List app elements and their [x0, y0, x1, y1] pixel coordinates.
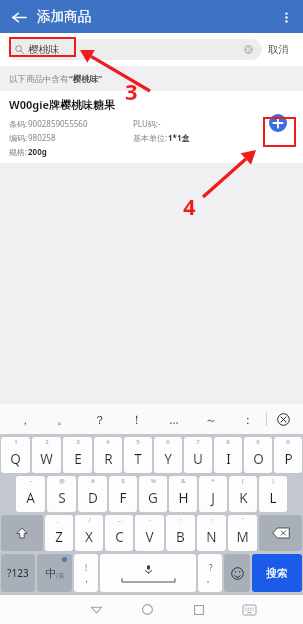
staticText: Q: [10, 450, 21, 468]
button[interactable]: ?: [198, 554, 222, 592]
button[interactable]: ': [228, 515, 257, 551]
button[interactable]: ?123: [1, 554, 35, 592]
button[interactable]: 3: [63, 437, 92, 473]
staticText: F: [119, 489, 127, 507]
staticText: 。: [206, 573, 215, 584]
staticText: ): [272, 477, 274, 485]
staticText: ～: [205, 412, 217, 427]
staticText: M: [236, 528, 249, 546]
button[interactable]: 取消: [262, 38, 295, 61]
button[interactable]: Back: [5, 3, 33, 31]
button[interactable]: ，: [6, 404, 44, 434]
staticText: J: [211, 489, 215, 507]
button[interactable]: Recents: [173, 595, 224, 624]
button[interactable]: /: [75, 515, 103, 551]
button[interactable]: !: [74, 554, 98, 592]
button[interactable]: Back: [70, 595, 122, 624]
staticText: 基本单位:: [133, 132, 168, 143]
button[interactable]: Delete: [267, 404, 299, 434]
button[interactable]: Backspace: [259, 515, 302, 551]
button[interactable]: Keyboard: [224, 595, 275, 624]
button[interactable]: More options: [273, 4, 299, 30]
button[interactable]: ～: [192, 404, 229, 434]
staticText: 搜索: [266, 566, 288, 580]
staticText: 200g: [28, 146, 47, 157]
button[interactable]: #: [78, 476, 107, 512]
button[interactable]: $: [109, 476, 137, 512]
staticText: X: [85, 528, 93, 546]
staticText: “樱桃味”: [69, 73, 103, 85]
button[interactable]: %: [139, 476, 167, 512]
button[interactable]: 5: [124, 437, 152, 473]
button[interactable]: Shift: [1, 515, 43, 551]
staticText: -: [149, 516, 151, 524]
button[interactable]: 中: [37, 554, 72, 592]
staticText: 4: [106, 438, 110, 446]
staticText: /: [88, 516, 91, 524]
button[interactable]: 6: [154, 437, 182, 473]
button[interactable]: 搜索: [252, 554, 302, 592]
staticText: PLU码:: [133, 118, 158, 129]
button[interactable]: 0: [274, 437, 302, 473]
button[interactable]: 。: [44, 404, 81, 434]
button[interactable]: Emoji: [224, 554, 250, 592]
staticText: $: [121, 477, 125, 485]
button[interactable]: ！: [118, 404, 155, 434]
staticText: 。: [57, 412, 69, 427]
button[interactable]: -: [135, 515, 164, 551]
staticText: ：: [242, 412, 254, 427]
staticText: ': [242, 516, 244, 524]
button[interactable]: 8: [214, 437, 242, 473]
staticText: 樱桃味: [28, 43, 60, 56]
button[interactable]: :: [166, 515, 195, 551]
staticText: 7: [196, 438, 200, 446]
staticText: 条码:: [9, 118, 28, 129]
button[interactable]: 9: [244, 437, 272, 473]
button[interactable]: ): [259, 476, 287, 512]
staticText: 3: [125, 76, 138, 106]
button[interactable]: 1: [1, 437, 30, 473]
staticText: B: [176, 528, 185, 546]
staticText: 9: [256, 438, 260, 446]
button[interactable]: ：: [229, 404, 266, 434]
button[interactable]: Space: [100, 554, 196, 592]
staticText: 5: [136, 438, 140, 446]
staticText: #: [91, 477, 95, 485]
staticText: ，: [19, 412, 31, 427]
staticText: 4: [183, 191, 196, 221]
button[interactable]: *: [199, 476, 227, 512]
button[interactable]: Add product: [266, 111, 290, 135]
button[interactable]: 、: [45, 515, 73, 551]
button[interactable]: 7: [184, 437, 212, 473]
staticText: ?: [209, 562, 213, 573]
staticText: E: [74, 450, 82, 468]
button[interactable]: ？: [81, 404, 118, 434]
staticText: L: [269, 489, 277, 507]
button[interactable]: 2: [32, 437, 61, 473]
staticText: 1: [14, 438, 18, 446]
button[interactable]: Home: [122, 595, 173, 624]
button[interactable]: Clear text: [242, 43, 255, 56]
staticText: Y: [164, 450, 172, 468]
button[interactable]: &: [169, 476, 197, 512]
staticText: 1*1盒: [168, 132, 190, 143]
button[interactable]: 樱桃味: [8, 39, 262, 60]
button[interactable]: …: [105, 515, 133, 551]
button[interactable]: 4: [94, 437, 122, 473]
staticText: 8: [226, 438, 230, 446]
button[interactable]: ;: [197, 515, 226, 551]
button[interactable]: …: [155, 404, 192, 434]
staticText: &: [181, 477, 186, 485]
button[interactable]: (: [229, 476, 257, 512]
staticText: (: [242, 477, 244, 485]
button[interactable]: ~: [16, 476, 45, 512]
staticText: 编码:: [9, 132, 28, 143]
button[interactable]: @: [47, 476, 76, 512]
staticText: T: [134, 450, 142, 468]
staticText: 取消: [268, 43, 289, 56]
staticText: 6: [166, 438, 170, 446]
staticText: 2: [45, 438, 49, 446]
staticText: /英: [56, 571, 65, 580]
staticText: V: [145, 528, 154, 546]
staticText: O: [253, 450, 264, 468]
